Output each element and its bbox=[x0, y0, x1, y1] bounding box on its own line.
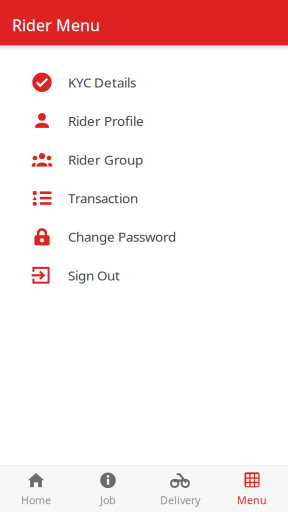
staticText: KYC Details bbox=[68, 73, 136, 91]
button[interactable]: Home bbox=[0, 465, 72, 512]
staticText: Delivery bbox=[160, 493, 200, 507]
button[interactable]: Sign Out bbox=[0, 256, 288, 295]
staticText: Menu bbox=[237, 493, 267, 507]
button[interactable]: Rider Group bbox=[0, 140, 288, 179]
staticText: Sign Out bbox=[68, 266, 120, 284]
staticText: Transaction bbox=[68, 189, 138, 207]
staticText: Rider Profile bbox=[68, 112, 144, 130]
button[interactable]: Job bbox=[72, 465, 144, 512]
button[interactable]: Transaction bbox=[0, 179, 288, 217]
staticText: Rider Menu bbox=[12, 14, 100, 36]
button[interactable]: Rider Menu bbox=[12, 14, 100, 36]
staticText: Change Password bbox=[68, 228, 176, 245]
button[interactable]: KYC Details bbox=[0, 63, 288, 102]
button[interactable]: Change Password bbox=[0, 217, 288, 256]
button[interactable]: Delivery bbox=[144, 465, 216, 512]
staticText: Job bbox=[100, 493, 116, 507]
button[interactable]: Rider Profile bbox=[0, 102, 288, 140]
button[interactable]: Menu bbox=[216, 465, 288, 512]
staticText: Home bbox=[21, 493, 51, 507]
staticText: Rider Group bbox=[68, 151, 143, 168]
